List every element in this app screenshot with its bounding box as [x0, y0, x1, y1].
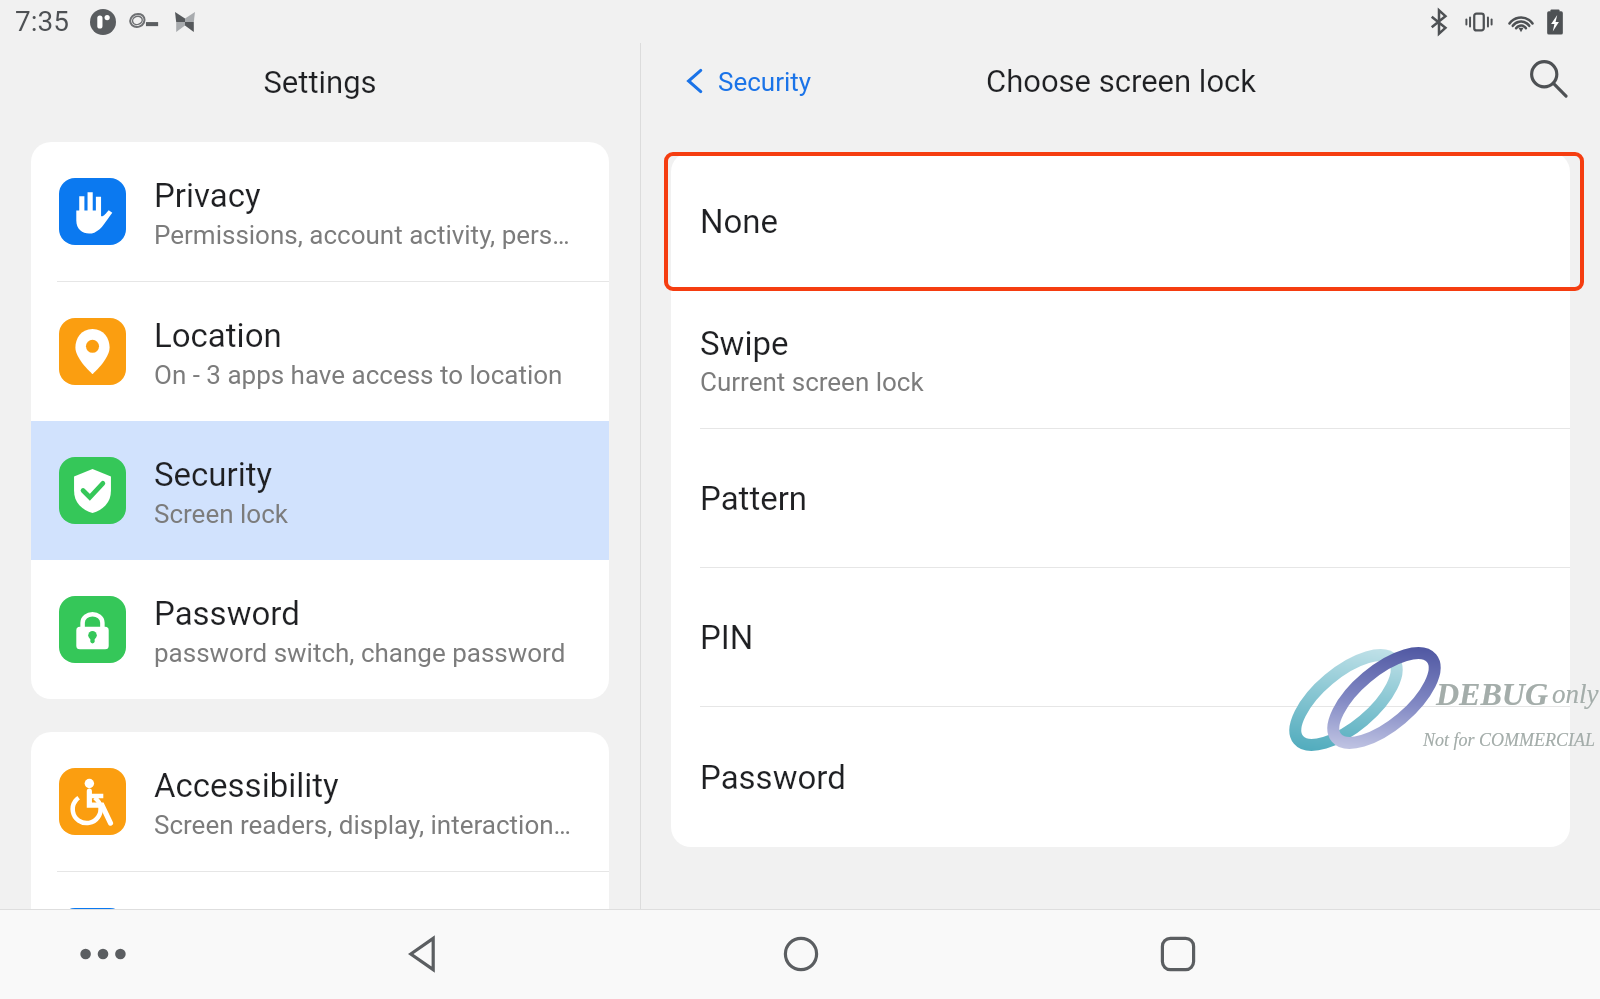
staticText: Permissions, account activity, pers…	[154, 220, 570, 250]
staticText: Screen readers, display, interaction…	[154, 810, 571, 840]
staticText: PIN	[700, 618, 754, 657]
staticText: Current screen lock	[700, 367, 924, 397]
button[interactable]: Back	[377, 909, 467, 999]
button[interactable]: Privacy	[31, 142, 609, 281]
button[interactable]: Password	[671, 707, 1570, 847]
staticText: Accessibility	[154, 766, 339, 805]
staticText: Privacy	[154, 176, 261, 215]
staticText: None	[700, 202, 779, 241]
button[interactable]: Digital Wellbeing	[31, 872, 609, 999]
button[interactable]: Password	[31, 560, 609, 699]
staticText: Choose screen lock	[986, 63, 1257, 99]
staticText: Screen time, app timers	[154, 950, 427, 980]
staticText: Screen lock	[154, 499, 288, 529]
staticText: 7:35	[15, 5, 69, 38]
staticText: Pattern	[700, 479, 808, 518]
staticText: only	[1552, 679, 1599, 709]
button[interactable]: Accessibility	[31, 732, 609, 871]
button[interactable]: Location	[31, 282, 609, 421]
staticText: password switch, change password	[154, 638, 566, 668]
staticText: On - 3 apps have access to location	[154, 360, 563, 390]
staticText: Digital Wellbeing	[154, 906, 399, 945]
staticText: Security	[718, 67, 812, 97]
staticText: Security	[154, 455, 273, 494]
staticText: Settings	[0, 64, 640, 100]
staticText: DEBUG	[1436, 676, 1549, 711]
button[interactable]: None	[671, 152, 1570, 290]
button[interactable]: Swipe	[671, 290, 1570, 428]
button[interactable]: Security	[31, 421, 609, 560]
staticText: Not for COMMERCIAL	[1423, 730, 1596, 750]
button[interactable]: Recents	[1133, 909, 1223, 999]
staticText: Location	[154, 316, 282, 355]
button[interactable]: Search	[1518, 48, 1578, 108]
staticText: Swipe	[700, 324, 789, 363]
button[interactable]: Home	[756, 909, 846, 999]
staticText: Password	[154, 594, 300, 633]
button[interactable]: Pattern	[671, 429, 1570, 567]
button[interactable]: Security	[671, 54, 822, 108]
button[interactable]: PIN	[671, 568, 1570, 706]
staticText: Password	[700, 758, 846, 797]
button[interactable]: More options	[58, 909, 148, 999]
